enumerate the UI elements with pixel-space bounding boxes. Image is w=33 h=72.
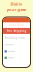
staticText: Gear Shop [9, 23, 24, 26]
staticText: Free shipping [6, 29, 26, 33]
staticText: Dial in [10, 1, 22, 7]
staticText: your gear [6, 7, 26, 12]
staticText: Trending now [4, 36, 24, 40]
